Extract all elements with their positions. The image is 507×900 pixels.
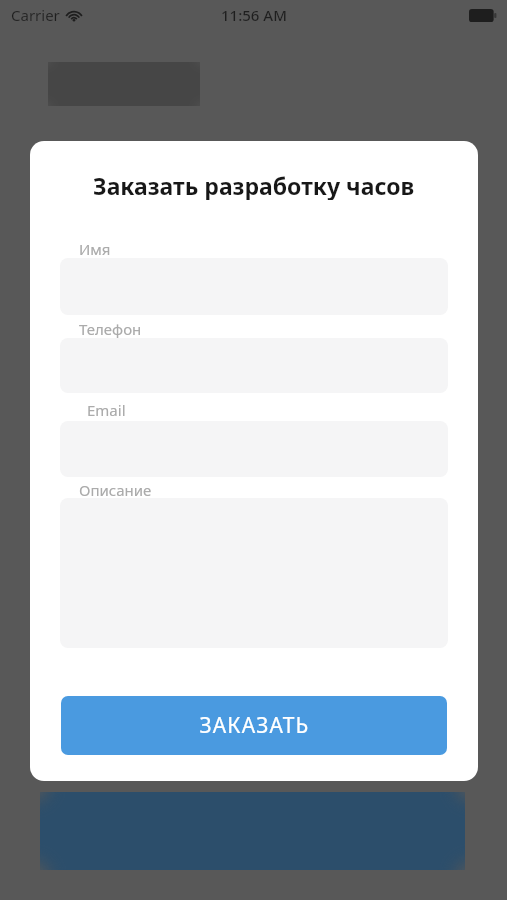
staticText: 11:56 AM [221, 5, 287, 25]
staticText: ЗАКАЗАТЬ [199, 711, 310, 740]
staticText: Имя [79, 239, 111, 259]
button[interactable]: ЗАКАЗАТЬ [61, 696, 447, 755]
staticText: Email [87, 400, 126, 420]
staticText: Carrier [11, 5, 60, 25]
staticText: Описание [79, 480, 152, 500]
staticText: Заказать разработку часов [93, 170, 415, 200]
staticText: Телефон [79, 319, 142, 339]
